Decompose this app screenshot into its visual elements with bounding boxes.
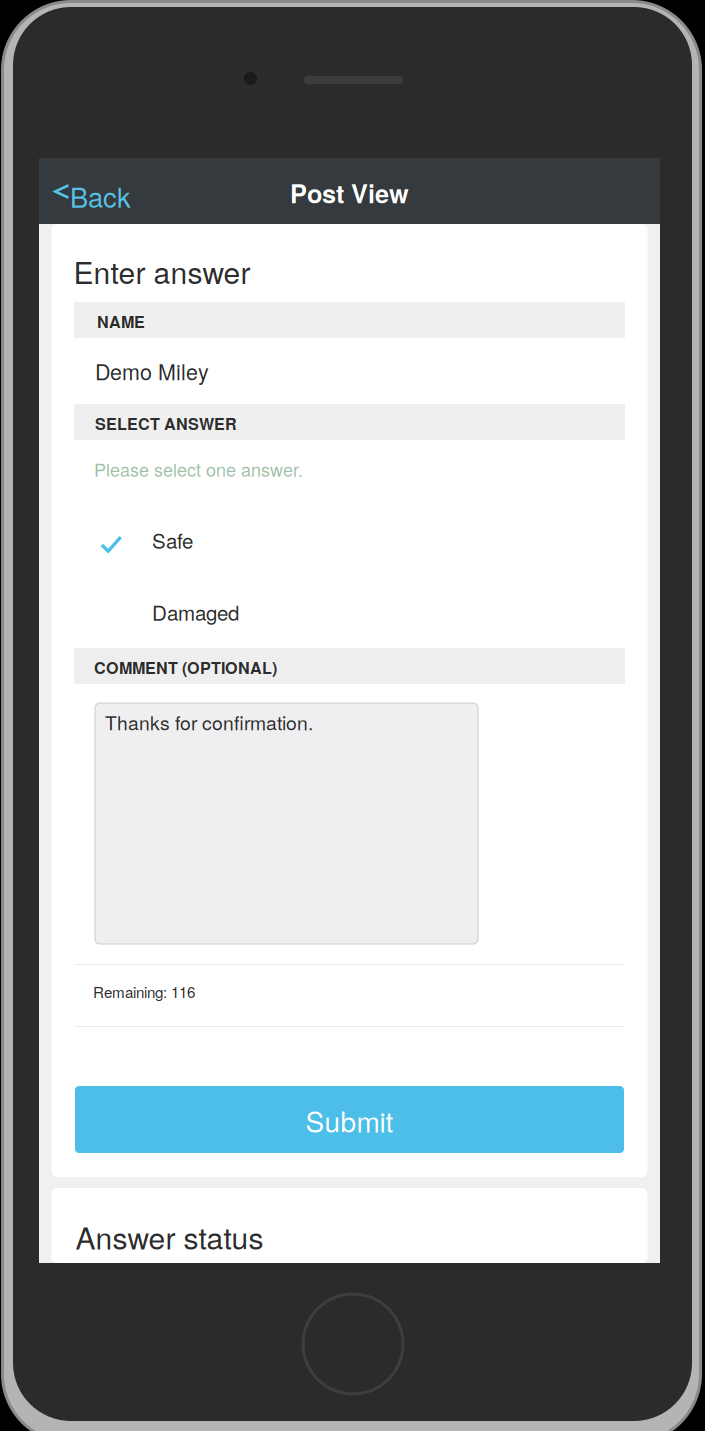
button[interactable]: Damaged [74,570,625,642]
staticText: Post View [290,175,409,211]
staticText: SELECT ANSWER [95,412,237,435]
staticText: Damaged [152,597,239,627]
staticText: Thanks for confirmation. [105,708,313,736]
button[interactable]: Safe [74,498,625,570]
button[interactable]: Back [39,158,199,224]
staticText: Please select one answer. [94,456,303,482]
button[interactable]: Submit [75,1086,624,1153]
staticText: Demo Miley [95,356,209,386]
staticText: Enter answer [73,249,250,292]
staticText: NAME [97,310,145,333]
staticText: Remaining: 116 [93,981,195,1002]
staticText: Back [70,176,131,215]
staticText: Answer status [75,1215,263,1258]
staticText: Submit [305,1100,393,1141]
staticText: Safe [152,525,193,555]
staticText: COMMENT (OPTIONAL) [94,656,277,679]
